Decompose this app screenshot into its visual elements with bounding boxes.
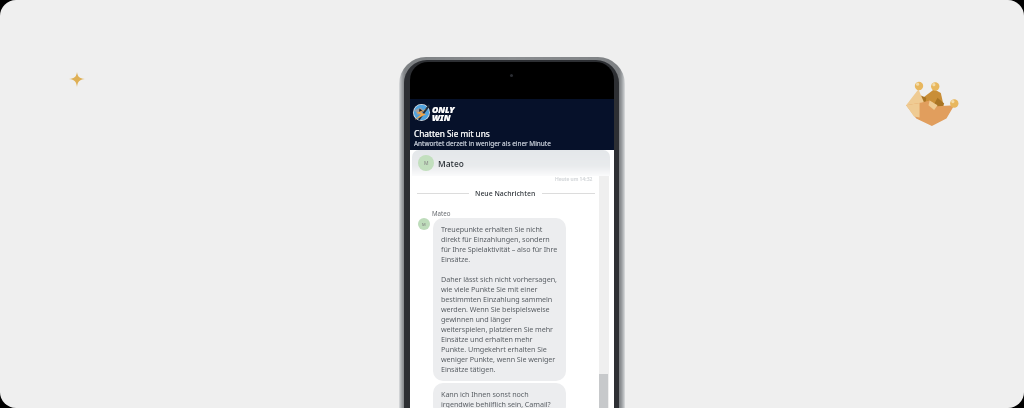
staticText: Mateo	[438, 158, 464, 169]
staticText: Antwortet derzeit in weniger als einer M…	[414, 139, 551, 148]
staticText: WIN	[432, 112, 451, 124]
staticText: Treuepunkte erhalten Sie nicht direkt fü…	[441, 224, 559, 374]
staticText: Neue Nachrichten	[475, 189, 536, 198]
staticText: Mateo	[432, 209, 451, 217]
button[interactable]: M	[412, 150, 610, 176]
staticText: ONLY	[432, 104, 455, 116]
staticText: M	[422, 222, 426, 227]
staticText: Chatten Sie mit uns	[414, 128, 490, 139]
staticText: Kann ich Ihnen sonst noch irgendwie behi…	[441, 389, 559, 408]
staticText: Heute um 14:32	[555, 176, 593, 183]
staticText: M	[424, 160, 429, 167]
